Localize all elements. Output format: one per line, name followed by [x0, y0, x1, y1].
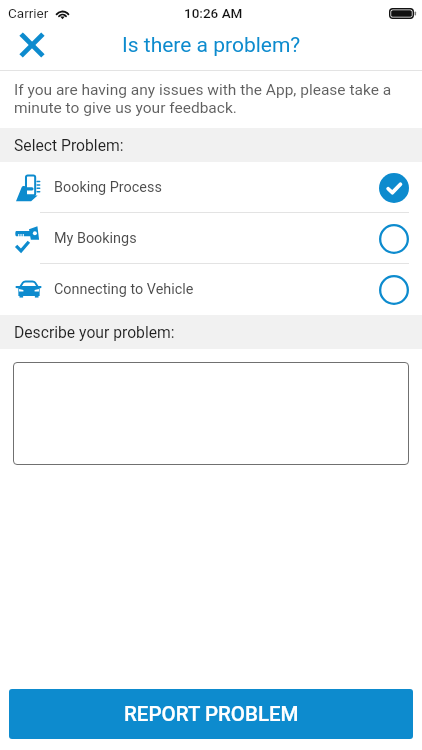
staticText: Carrier: [8, 5, 49, 21]
button[interactable]: My Bookings: [0, 213, 422, 264]
staticText: Select Problem:: [14, 136, 124, 154]
staticText: Describe your problem:: [14, 323, 175, 341]
staticText: REPORT PROBLEM: [124, 702, 299, 726]
button[interactable]: Connecting to Vehicle: [0, 264, 422, 315]
button[interactable]: [13, 362, 409, 465]
button[interactable]: REPORT PROBLEM: [9, 689, 413, 739]
button[interactable]: Booking Process: [0, 162, 422, 213]
staticText: If you are having any issues with the Ap…: [14, 81, 398, 117]
staticText: 10:26 AM: [184, 5, 243, 21]
staticText: My Bookings: [54, 230, 137, 247]
button[interactable]: Close: [9, 23, 55, 67]
staticText: Connecting to Vehicle: [54, 281, 194, 298]
staticText: Booking Process: [54, 179, 162, 196]
staticText: Is there a problem?: [122, 33, 301, 58]
